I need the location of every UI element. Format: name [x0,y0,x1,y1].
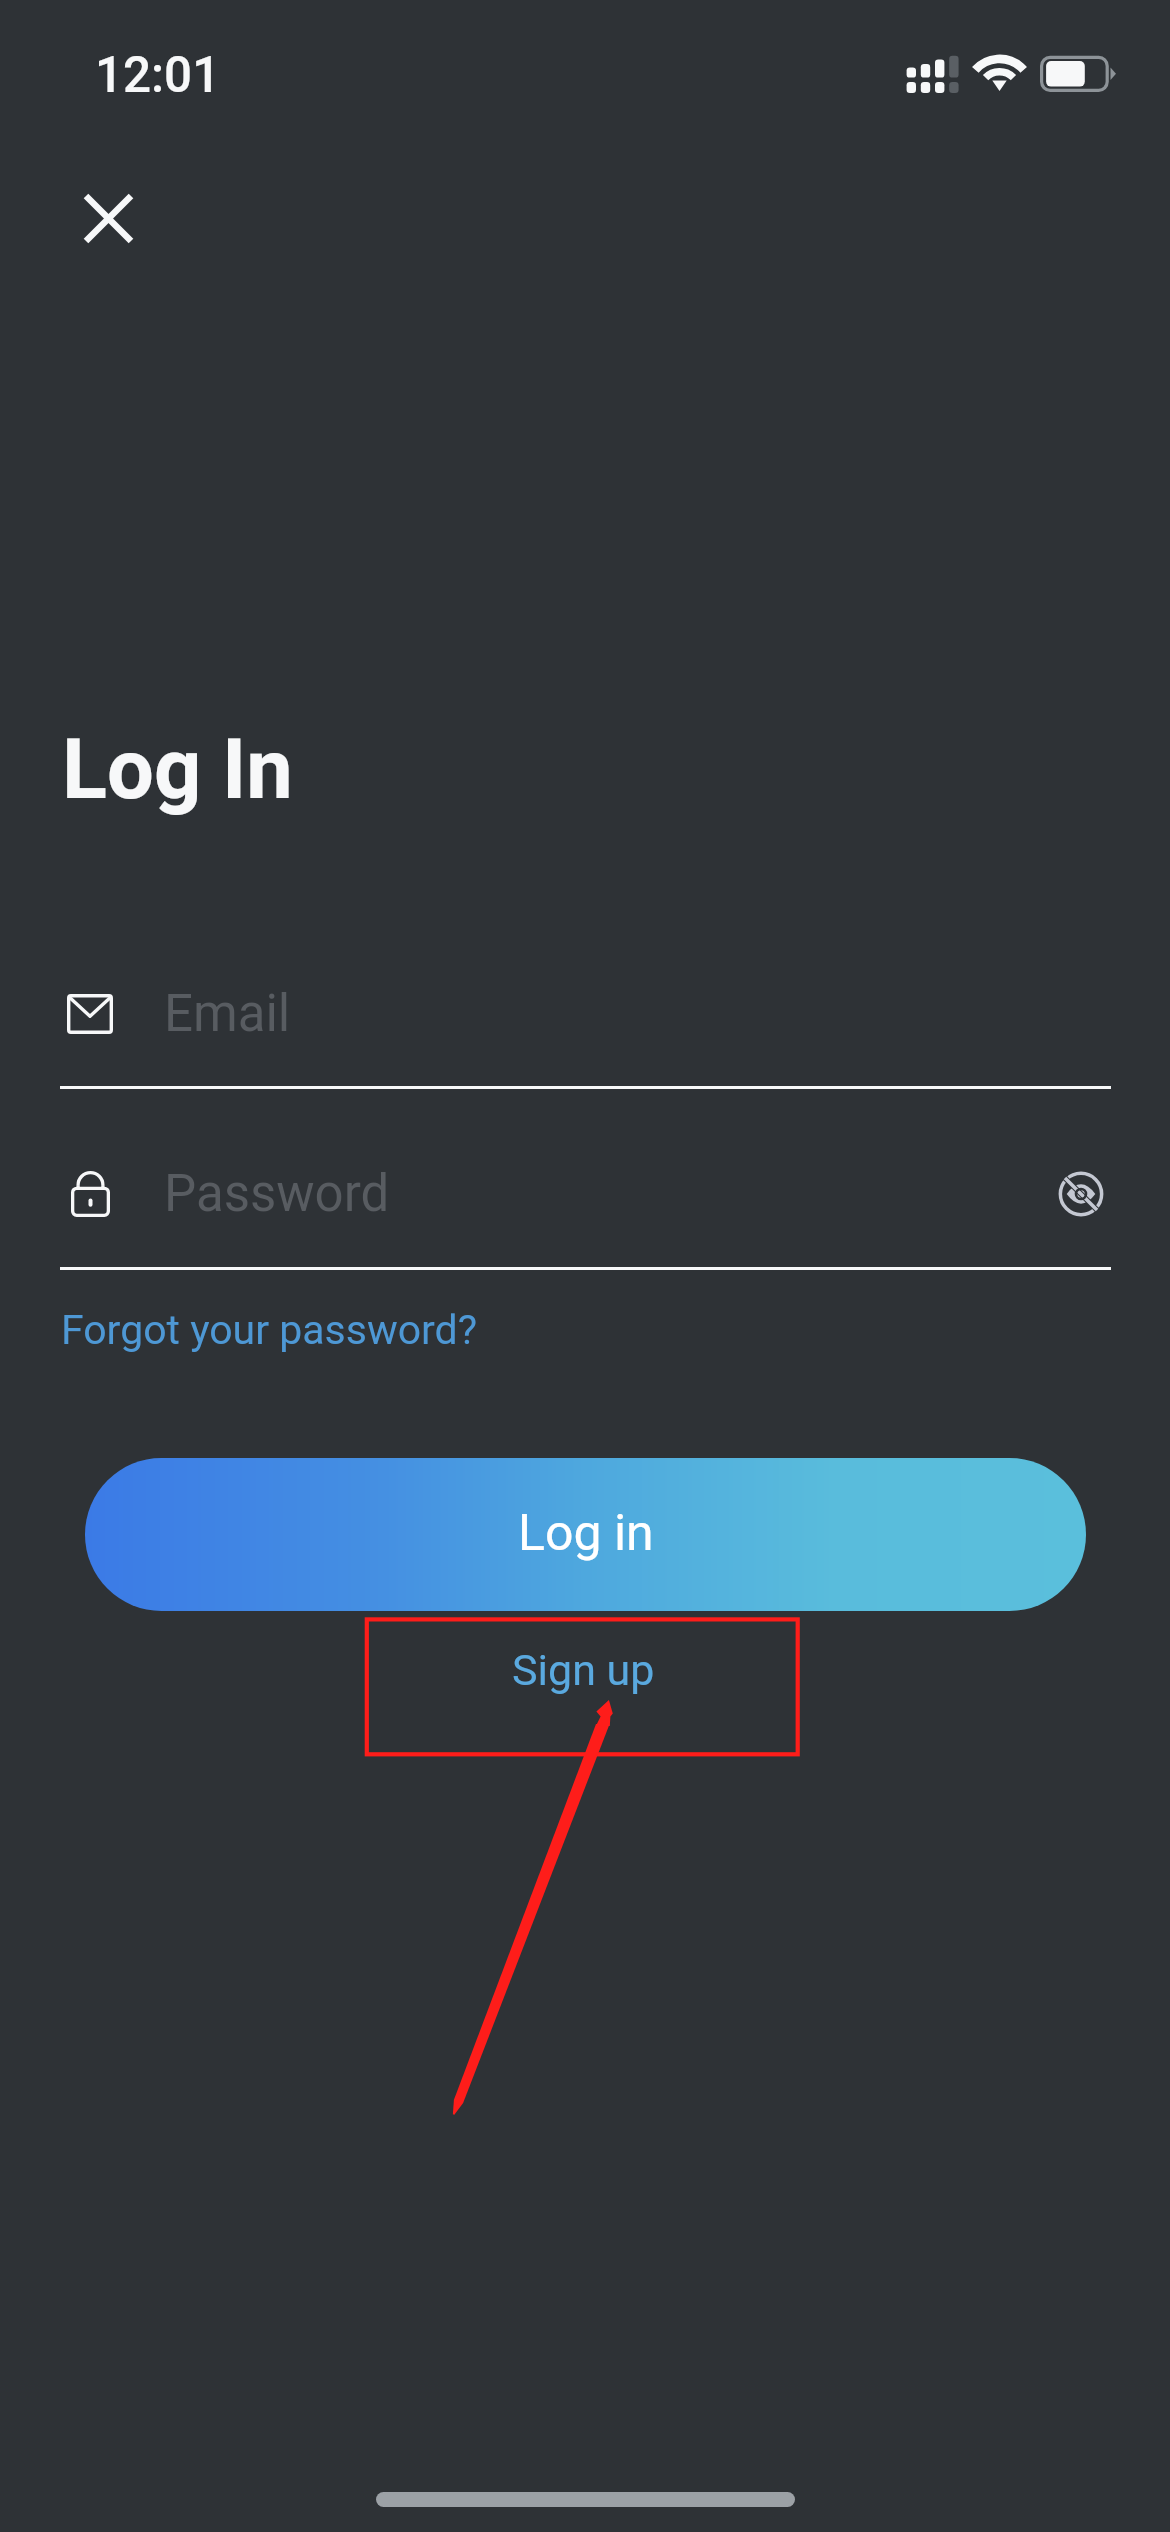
button[interactable]: Forgot your password? [55,1301,484,1359]
staticText: Log in [518,1504,654,1563]
staticText: 12:01 [95,46,221,104]
button[interactable]: Sign up [365,1617,800,1756]
staticText: Sign up [512,1645,655,1695]
staticText: Forgot your password? [61,1306,478,1354]
staticText: Email [164,984,291,1044]
button[interactable]: Show password [1036,1146,1126,1242]
button[interactable]: Email [60,975,1111,1089]
staticText: Password [164,1164,390,1224]
button[interactable]: Log in [85,1458,1086,1611]
button[interactable]: Close [60,170,157,267]
button[interactable]: Password [60,1155,1111,1270]
staticText: Log In [62,721,293,818]
